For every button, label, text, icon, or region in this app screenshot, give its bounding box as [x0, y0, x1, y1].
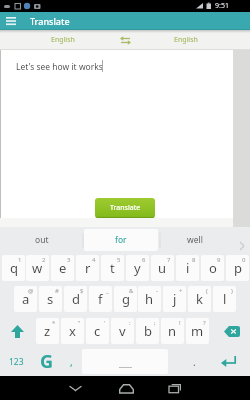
button[interactable]: i	[176, 255, 199, 281]
button[interactable]: Translate	[95, 198, 155, 218]
staticText: 4	[92, 256, 96, 264]
button[interactable]	[164, 376, 186, 400]
staticText: &	[129, 287, 134, 295]
staticText: v	[119, 322, 126, 340]
button[interactable]: a	[14, 286, 37, 312]
staticText: ;	[154, 319, 156, 327]
staticText: r	[85, 259, 91, 277]
button[interactable]	[214, 318, 249, 344]
staticText: n	[168, 322, 177, 340]
staticText: 123	[9, 356, 24, 368]
staticText: s	[47, 290, 54, 308]
button[interactable]: s	[39, 286, 62, 312]
staticText: 3	[67, 256, 71, 264]
button[interactable]: g	[114, 286, 137, 312]
button[interactable]: k	[188, 286, 211, 312]
button[interactable]: z	[36, 318, 59, 344]
staticText: ?	[203, 319, 206, 327]
button[interactable]: English	[13, 30, 113, 50]
staticText: q	[10, 259, 18, 277]
staticText: :	[129, 319, 131, 327]
staticText: p	[234, 259, 242, 277]
staticText: #	[55, 287, 59, 295]
staticText: '	[104, 319, 106, 327]
button[interactable]: English	[136, 30, 236, 50]
button[interactable]: p	[226, 255, 249, 281]
staticText: 1	[18, 256, 22, 264]
staticText: Let's see how it works	[16, 61, 103, 73]
button[interactable]: G	[34, 349, 60, 374]
staticText: a	[22, 290, 30, 308]
staticText: 2	[42, 256, 46, 264]
staticText: well	[187, 234, 203, 246]
staticText: @	[28, 287, 34, 295]
button[interactable]: ,	[61, 349, 81, 374]
staticText: (	[206, 287, 208, 295]
button[interactable]: e	[51, 255, 74, 281]
staticText: 0	[242, 256, 246, 264]
staticText: d	[72, 290, 80, 308]
button[interactable]: q	[2, 255, 25, 281]
button[interactable]	[113, 30, 137, 50]
staticText: G	[40, 349, 54, 374]
button[interactable]: m	[186, 318, 209, 344]
button[interactable]: l	[213, 286, 236, 312]
staticText: for	[115, 234, 127, 246]
staticText: English	[51, 35, 75, 45]
button[interactable]: f	[89, 286, 112, 312]
button[interactable]: n	[161, 318, 184, 344]
button[interactable]: t	[101, 255, 124, 281]
button[interactable]: c	[86, 318, 109, 344]
button[interactable]: w	[26, 255, 49, 281]
staticText: i	[186, 259, 190, 277]
button[interactable]: u	[151, 255, 174, 281]
staticText: l	[223, 290, 227, 308]
staticText: out	[35, 234, 49, 246]
staticText: u	[158, 259, 167, 277]
button[interactable]	[115, 376, 137, 400]
button[interactable]: b	[136, 318, 159, 344]
button[interactable]: x	[61, 318, 84, 344]
button[interactable]: out	[20, 227, 64, 253]
staticText: Translate	[30, 15, 70, 27]
staticText: o	[209, 259, 217, 277]
staticText: )	[231, 287, 233, 295]
staticText: $	[80, 287, 84, 295]
button[interactable]: .	[179, 349, 209, 374]
button[interactable]: d	[64, 286, 87, 312]
button[interactable]: h	[138, 286, 161, 312]
button[interactable]	[64, 376, 86, 400]
staticText: 9	[217, 256, 221, 264]
staticText: c	[94, 322, 101, 340]
button[interactable]: r	[76, 255, 99, 281]
staticText: !	[179, 319, 181, 327]
staticText: _	[106, 287, 109, 295]
staticText: f	[98, 290, 103, 308]
staticText: b	[144, 322, 152, 340]
button[interactable]	[1, 14, 20, 28]
button[interactable]: 123	[1, 349, 32, 374]
button[interactable]	[82, 349, 168, 374]
staticText: m	[191, 322, 204, 340]
staticText: .	[193, 355, 196, 369]
button[interactable]	[1, 318, 33, 344]
staticText: *	[52, 319, 56, 327]
staticText: 7	[167, 256, 171, 264]
button[interactable]	[208, 349, 249, 374]
staticText: 9:51	[215, 1, 229, 11]
button[interactable]: y	[126, 255, 149, 281]
staticText: x	[69, 322, 76, 340]
button[interactable]: j	[163, 286, 186, 312]
button[interactable]: well	[173, 227, 217, 253]
staticText: -	[156, 287, 158, 295]
staticText: k	[196, 290, 203, 308]
staticText: "	[78, 319, 81, 327]
staticText: 5	[117, 256, 121, 264]
staticText: English	[174, 35, 198, 45]
button[interactable]: v	[111, 318, 134, 344]
staticText: z	[44, 322, 51, 340]
staticText: 8	[192, 256, 196, 264]
staticText: ,	[70, 355, 73, 369]
button[interactable]: o	[201, 255, 224, 281]
button[interactable]: for	[84, 229, 158, 251]
